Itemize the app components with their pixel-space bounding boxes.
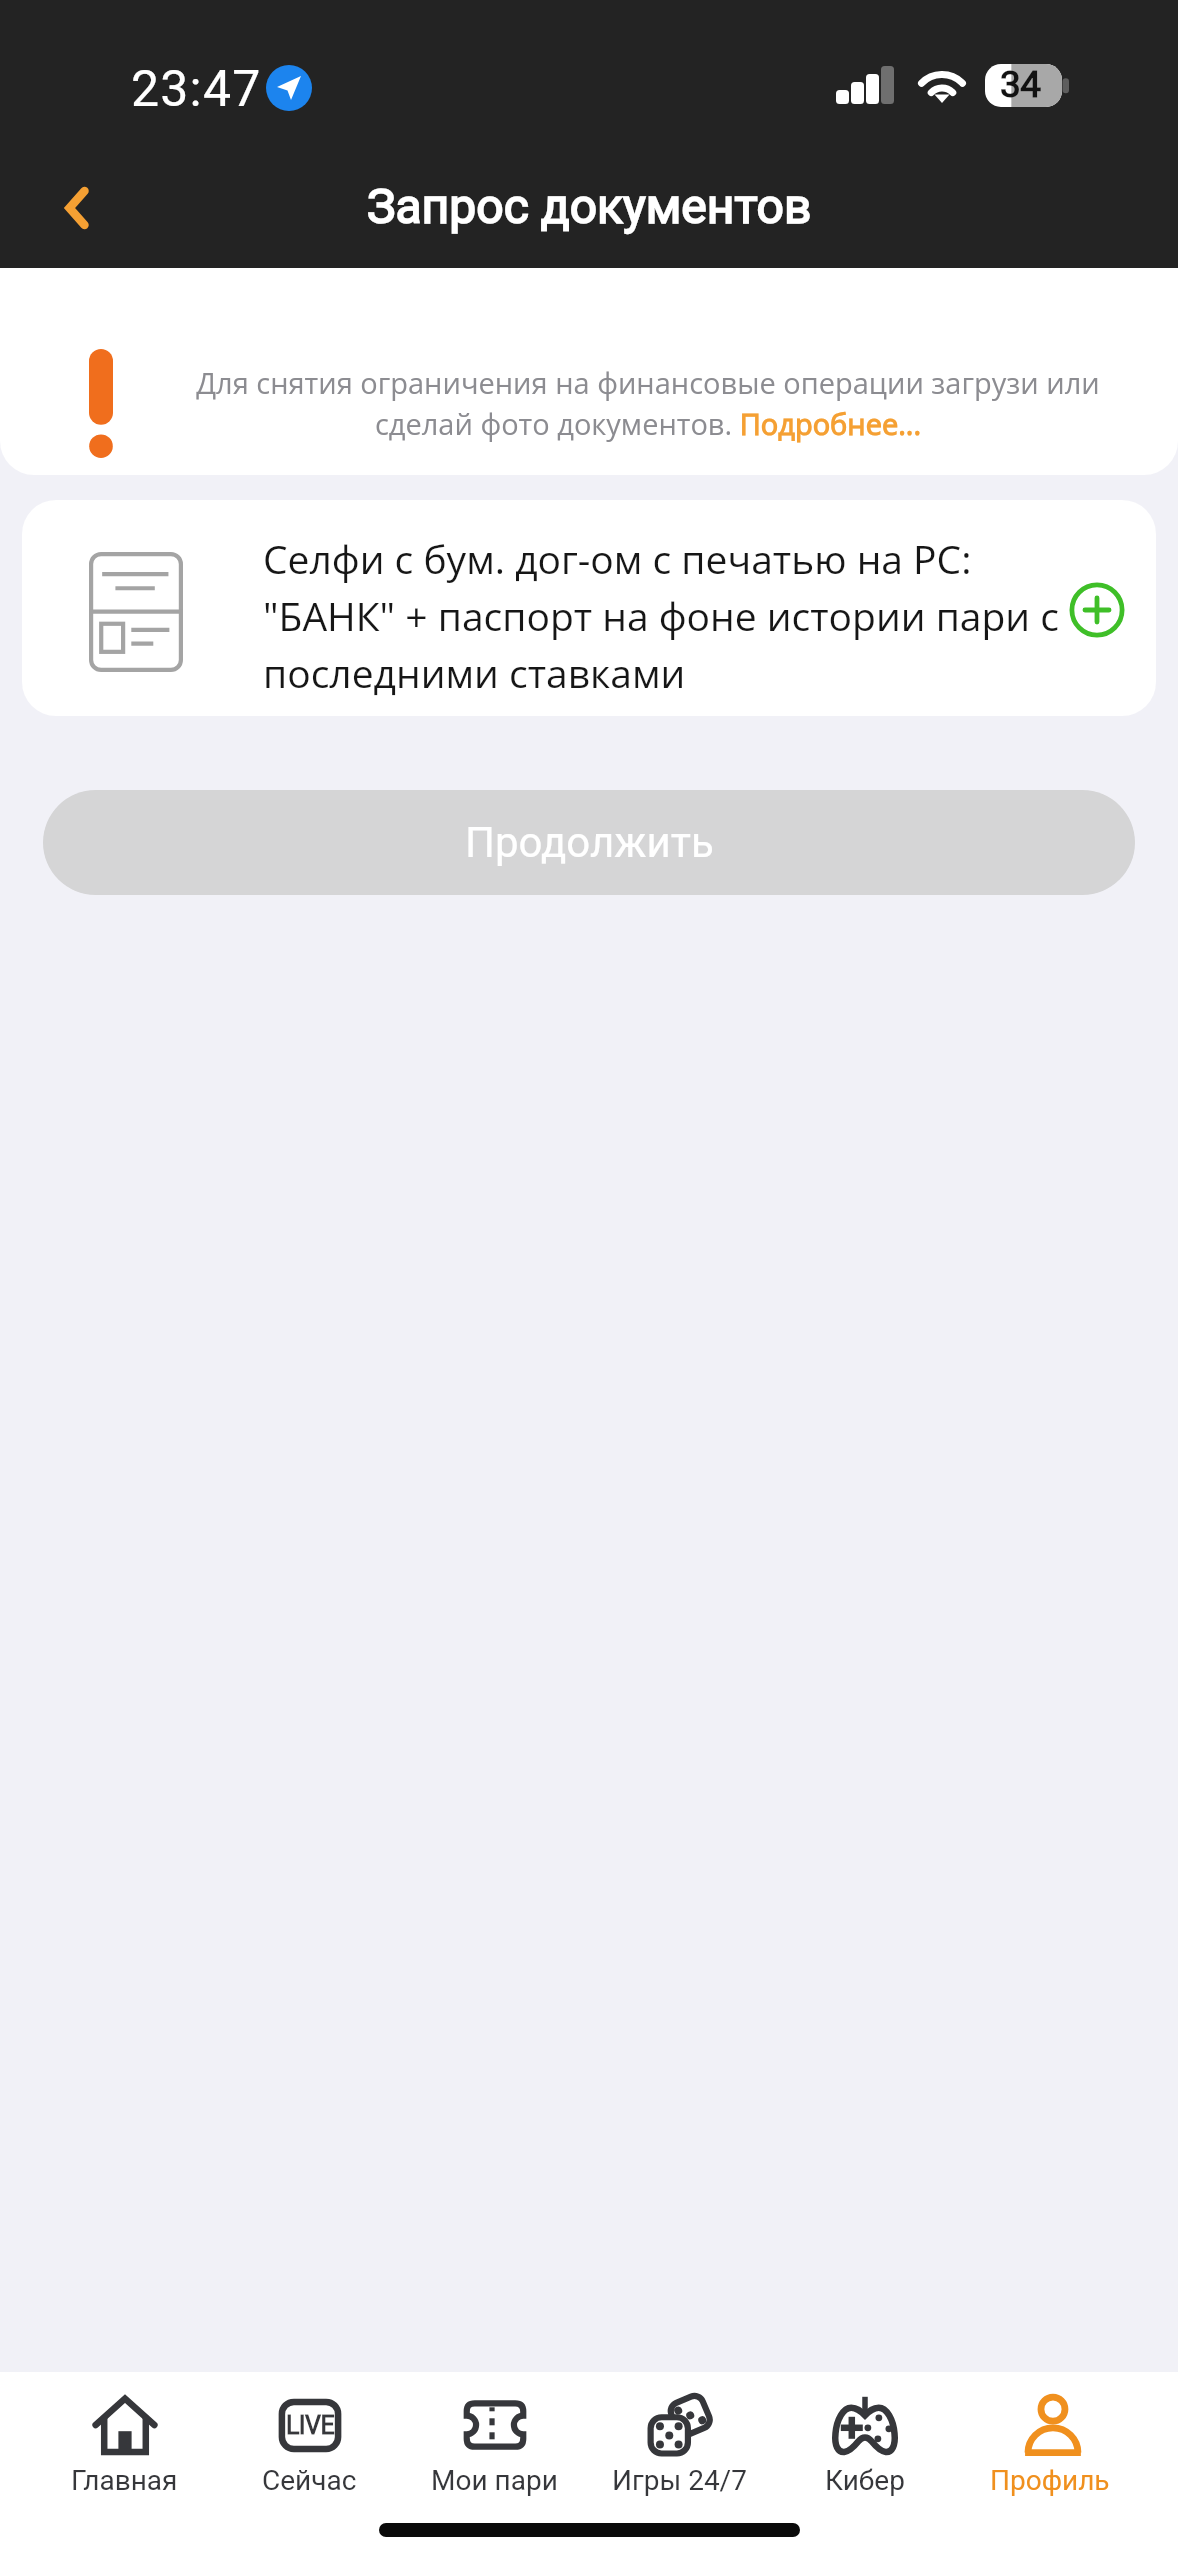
- staticText: Главная: [71, 2464, 178, 2497]
- button[interactable]: Продолжить: [43, 790, 1135, 895]
- button[interactable]: LIVE: [217, 2394, 402, 2514]
- staticText: Продолжить: [465, 818, 714, 867]
- button[interactable]: Профиль: [957, 2394, 1142, 2514]
- button[interactable]: Для снятия ограничения на финансовые опе…: [0, 268, 1178, 475]
- staticText: Игры 24/7: [612, 2464, 747, 2497]
- staticText: 23:47: [131, 60, 262, 119]
- staticText: Селфи с бум. дог-ом с печатью на РС: "БА…: [263, 532, 1063, 699]
- button[interactable]: Главная: [32, 2394, 217, 2514]
- staticText: LIVE: [286, 2411, 334, 2440]
- staticText: Сейчас: [262, 2464, 357, 2497]
- staticText: Запрос документов: [367, 178, 812, 234]
- button[interactable]: Add document: [1068, 581, 1126, 639]
- staticText: Для снятия ограничения на финансовые опе…: [188, 363, 1108, 444]
- staticText: Кибер: [825, 2464, 905, 2497]
- button[interactable]: Back: [40, 172, 106, 238]
- button[interactable]: Кибер: [772, 2394, 957, 2514]
- button[interactable]: Мои пари: [402, 2394, 587, 2514]
- staticText: Профиль: [990, 2464, 1110, 2497]
- staticText: 34: [1000, 63, 1041, 106]
- button[interactable]: Селфи с бум. дог-ом с печатью на РС: "БА…: [22, 500, 1156, 716]
- button[interactable]: Игры 24/7: [587, 2394, 772, 2514]
- staticText: Мои пари: [431, 2464, 558, 2497]
